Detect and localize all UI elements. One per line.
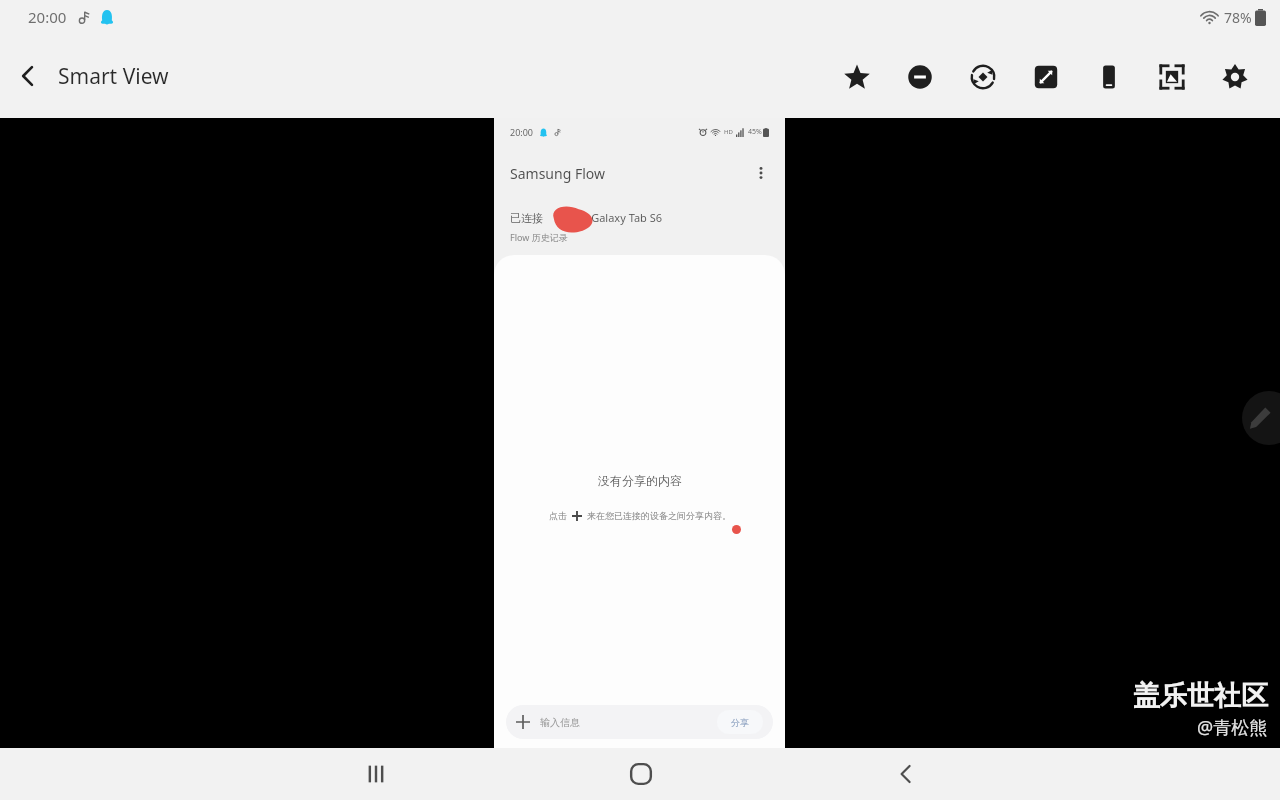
staticText: 点击 xyxy=(549,510,567,521)
staticText: 输入信息 xyxy=(540,716,580,729)
staticText: Smart View xyxy=(58,62,169,91)
button[interactable]: Draw xyxy=(1242,391,1280,445)
button[interactable]: Block xyxy=(888,45,951,108)
staticText: 盖乐世社区 xyxy=(1133,679,1268,713)
button[interactable]: Back xyxy=(0,48,56,104)
button[interactable]: More options xyxy=(747,159,775,187)
staticText: 45% xyxy=(748,127,762,137)
staticText: Flow 历史记录 xyxy=(510,231,568,243)
staticText: 来在您已连接的设备之间分享内容。 xyxy=(587,510,731,521)
button[interactable]: Expand xyxy=(1014,45,1077,108)
staticText: 20:00 xyxy=(28,7,67,27)
staticText: 已连接 的 Galaxy Tab S6 xyxy=(510,210,663,225)
button[interactable]: 输入信息 xyxy=(506,705,773,739)
button[interactable]: Recents xyxy=(243,748,508,800)
button[interactable]: 分享 xyxy=(717,710,763,734)
staticText: HD xyxy=(724,128,733,136)
button[interactable]: Rotate xyxy=(951,45,1014,108)
staticText: @青松熊 xyxy=(1197,715,1268,740)
staticText: Samsung Flow xyxy=(510,164,605,183)
button[interactable]: Home xyxy=(508,748,773,800)
button[interactable]: Favorite xyxy=(825,45,888,108)
staticText: 没有分享的内容 xyxy=(598,473,682,488)
button[interactable]: Phone xyxy=(1077,45,1140,108)
button[interactable]: Settings xyxy=(1203,45,1266,108)
button[interactable]: Screenshot xyxy=(1140,45,1203,108)
button[interactable]: Back xyxy=(773,748,1038,800)
staticText: 20:00 xyxy=(510,126,534,138)
staticText: 分享 xyxy=(731,717,749,728)
staticText: 78% xyxy=(1224,8,1252,27)
